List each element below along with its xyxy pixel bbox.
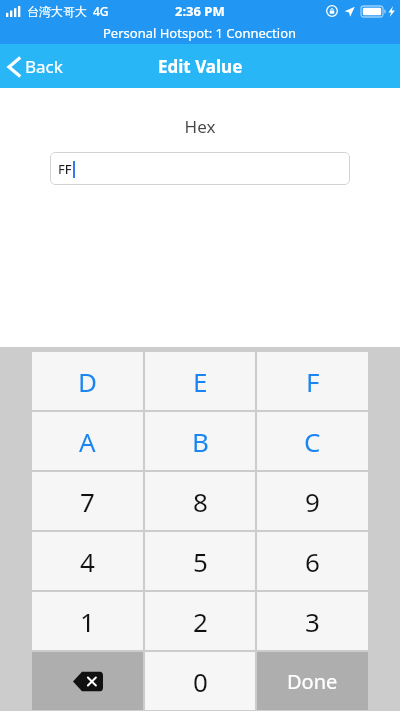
staticText: 2 bbox=[193, 604, 208, 639]
staticText: 7 bbox=[80, 484, 95, 519]
staticText: Hex bbox=[0, 115, 400, 138]
staticText: FF bbox=[58, 160, 72, 178]
staticText: 3 bbox=[305, 604, 320, 639]
staticText: 5 bbox=[193, 544, 208, 579]
button[interactable]: 4 bbox=[32, 532, 143, 590]
button[interactable]: F bbox=[257, 352, 368, 410]
button[interactable]: B bbox=[145, 412, 255, 470]
button[interactable]: 6 bbox=[257, 532, 368, 590]
button[interactable]: C bbox=[257, 412, 368, 470]
staticText: Edit Value bbox=[158, 55, 243, 78]
staticText: 4G bbox=[93, 3, 109, 19]
staticText: 2:36 PM bbox=[175, 2, 225, 20]
staticText: 0 bbox=[193, 664, 208, 699]
staticText: 9 bbox=[305, 484, 320, 519]
staticText: Personal Hotspot: 1 Connection bbox=[103, 24, 297, 42]
button[interactable]: 9 bbox=[257, 472, 368, 530]
staticText: 1 bbox=[80, 604, 95, 639]
button[interactable]: Backspace bbox=[32, 652, 143, 710]
staticText: 6 bbox=[305, 544, 320, 579]
staticText: E bbox=[193, 364, 208, 399]
staticText: Done bbox=[287, 668, 338, 695]
staticText: 台湾大哥大 bbox=[27, 4, 87, 19]
button[interactable]: 8 bbox=[145, 472, 255, 530]
button[interactable]: Done bbox=[257, 652, 368, 710]
button[interactable]: 7 bbox=[32, 472, 143, 530]
staticText: B bbox=[192, 424, 209, 459]
button[interactable]: A bbox=[32, 412, 143, 470]
staticText: 8 bbox=[193, 484, 208, 519]
staticText: D bbox=[78, 364, 97, 399]
button[interactable]: E bbox=[145, 352, 255, 410]
staticText: A bbox=[79, 424, 96, 459]
button[interactable]: D bbox=[32, 352, 143, 410]
button[interactable]: FF bbox=[50, 152, 350, 185]
button[interactable]: 5 bbox=[145, 532, 255, 590]
staticText: C bbox=[304, 424, 321, 459]
button[interactable]: Back bbox=[0, 49, 75, 84]
button[interactable]: 0 bbox=[145, 652, 255, 710]
staticText: F bbox=[306, 364, 320, 399]
staticText: Back bbox=[25, 55, 63, 78]
button[interactable]: 3 bbox=[257, 592, 368, 650]
button[interactable]: 2 bbox=[145, 592, 255, 650]
button[interactable]: 1 bbox=[32, 592, 143, 650]
staticText: 4 bbox=[80, 544, 95, 579]
